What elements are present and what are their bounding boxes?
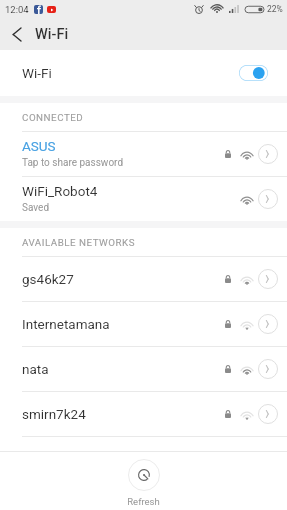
staticText: 22%: [267, 4, 283, 14]
button[interactable]: Network details: [258, 404, 278, 424]
button[interactable]: ASUS: [0, 132, 287, 176]
staticText: WiFi_Robot4: [22, 183, 98, 199]
staticText: Wi-Fi: [22, 65, 52, 81]
button[interactable]: nata: [0, 347, 287, 391]
staticText: Refresh: [127, 496, 160, 507]
button[interactable]: Network details: [258, 314, 278, 334]
staticText: smirn7k24: [22, 406, 86, 422]
button[interactable]: smirn7k24: [0, 392, 287, 436]
staticText: gs46k27: [22, 271, 74, 287]
staticText: Saved: [22, 202, 50, 214]
button[interactable]: Wi-Fi: [0, 50, 287, 96]
button[interactable]: Network details: [258, 144, 278, 164]
button[interactable]: Network details: [258, 359, 278, 379]
button[interactable]: Refresh: [0, 452, 287, 510]
button[interactable]: WiFi_Robot4: [0, 177, 287, 221]
staticText: nata: [22, 361, 49, 377]
button[interactable]: Internetamana: [0, 302, 287, 346]
button[interactable]: Network details: [258, 269, 278, 289]
staticText: 12:04: [5, 4, 29, 15]
staticText: ASUS: [22, 138, 56, 154]
staticText: Internetamana: [22, 316, 110, 332]
staticText: AVAILABLE NETWORKS: [22, 237, 136, 248]
button[interactable]: gs46k27: [0, 257, 287, 301]
staticText: Tap to share password: [22, 157, 124, 169]
staticText: CONNECTED: [22, 112, 84, 123]
staticText: Wi-Fi: [35, 26, 69, 43]
button[interactable]: Network details: [258, 189, 278, 209]
button[interactable]: Back: [0, 18, 35, 50]
